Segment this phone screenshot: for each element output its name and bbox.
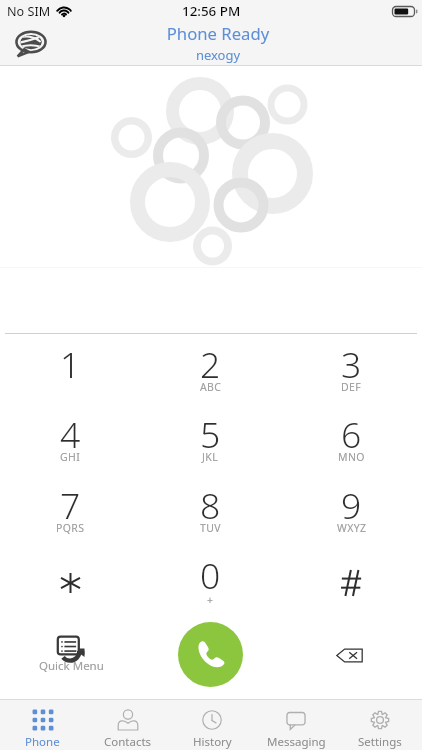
staticText: 8	[200, 481, 221, 529]
button[interactable]: 0	[140, 551, 281, 613]
button[interactable]: Messaging	[254, 699, 338, 750]
button[interactable]: 1	[0, 340, 140, 402]
button[interactable]	[0, 551, 140, 613]
button[interactable]: 5	[140, 410, 281, 472]
staticText: 7	[60, 481, 81, 529]
button[interactable]: History	[170, 699, 254, 750]
staticText: No SIM	[7, 3, 51, 20]
staticText: GHI	[60, 450, 81, 464]
button[interactable]: Phone	[0, 699, 85, 750]
staticText: 1	[60, 340, 81, 388]
staticText: History	[193, 734, 232, 750]
staticText: +	[207, 593, 214, 607]
staticText: Contacts	[104, 734, 152, 750]
button[interactable]: Settings	[338, 699, 422, 750]
staticText: 3	[341, 340, 362, 388]
staticText: DEF	[341, 380, 362, 394]
staticText: Quick Menu	[39, 658, 104, 674]
staticText: 6	[341, 410, 362, 458]
staticText: 4	[60, 410, 81, 458]
staticText: Settings	[358, 734, 402, 750]
staticText: TUV	[200, 521, 222, 535]
staticText: MNO	[338, 450, 365, 464]
button[interactable]: Call	[178, 622, 243, 687]
staticText: Phone	[25, 734, 60, 750]
button[interactable]: 7	[0, 481, 140, 543]
button[interactable]: 4	[0, 410, 140, 472]
button[interactable]	[281, 551, 422, 613]
button[interactable]: 2	[140, 340, 281, 402]
button[interactable]: Quick Menu	[23, 628, 119, 676]
staticText: 9	[341, 481, 362, 529]
staticText: JKL	[202, 450, 219, 464]
button[interactable]: Voicemail	[7, 25, 52, 60]
button[interactable]: 3	[281, 340, 422, 402]
staticText: 2	[200, 340, 221, 388]
staticText: Messaging	[267, 734, 326, 750]
button[interactable]: 9	[281, 481, 422, 543]
staticText: ABC	[200, 380, 222, 394]
button[interactable]: Contacts	[85, 699, 170, 750]
button[interactable]: Backspace	[317, 630, 381, 678]
staticText: Phone Ready	[7, 22, 422, 45]
staticText: 12:56 PM	[182, 2, 241, 20]
staticText: 5	[200, 410, 221, 458]
staticText: WXYZ	[337, 521, 367, 535]
staticText: nexogy	[7, 46, 422, 64]
button[interactable]: 8	[140, 481, 281, 543]
button[interactable]: 6	[281, 410, 422, 472]
staticText: PQRS	[56, 521, 85, 535]
staticText: 0	[200, 551, 221, 599]
